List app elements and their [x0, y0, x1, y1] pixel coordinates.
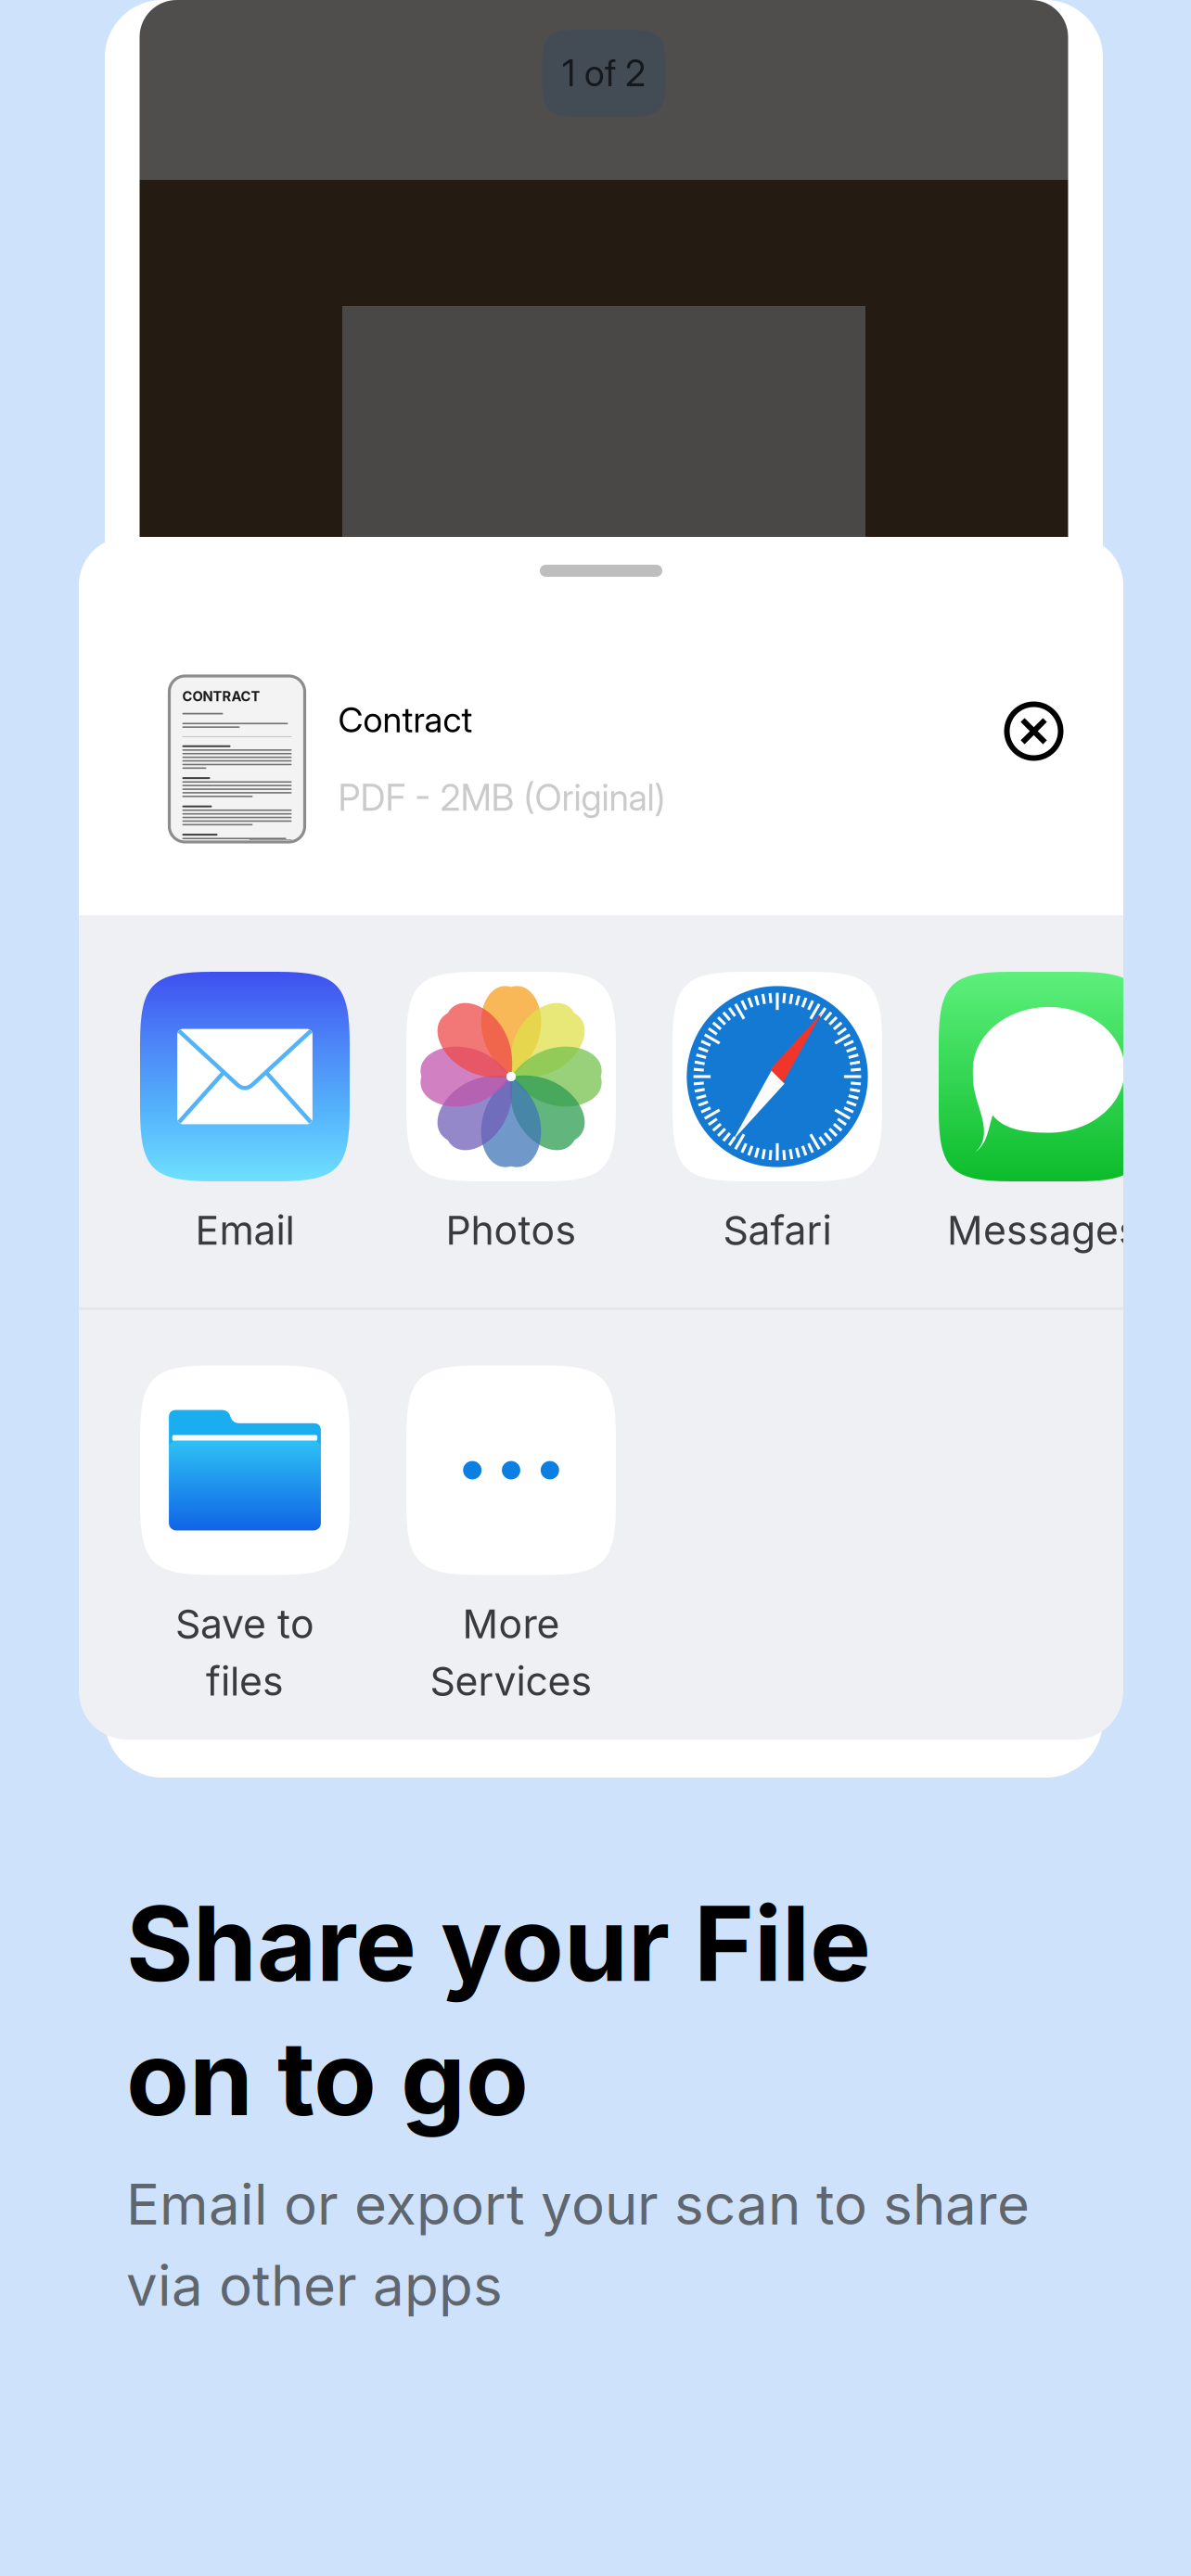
staticText: Contract: [338, 699, 473, 741]
button[interactable]: Safari: [672, 972, 882, 1307]
staticText: Email or export your scan to share: [126, 2171, 1030, 2238]
staticText: via other apps: [126, 2252, 503, 2319]
button[interactable]: Photos: [406, 972, 616, 1307]
staticText: Photos: [446, 1206, 576, 1254]
staticText: More: [462, 1600, 560, 1648]
staticText: files: [206, 1657, 284, 1705]
staticText: Share your File: [126, 1881, 871, 2006]
staticText: Safari: [723, 1206, 832, 1254]
button[interactable]: More: [406, 1365, 616, 1739]
button[interactable]: Save to: [140, 1365, 350, 1739]
button[interactable]: Close: [1007, 704, 1061, 758]
staticText: Messages: [947, 1206, 1140, 1254]
button[interactable]: Messages: [939, 972, 1148, 1307]
staticText: Save to: [175, 1600, 314, 1648]
staticText: on to go: [126, 2016, 529, 2140]
staticText: PDF - 2MB (Original): [338, 776, 666, 819]
staticText: CONTRACT: [182, 688, 260, 704]
staticText: 1 of 2: [562, 52, 646, 95]
button[interactable]: Email: [140, 972, 350, 1307]
staticText: Email: [195, 1206, 295, 1254]
staticText: Services: [430, 1657, 592, 1705]
